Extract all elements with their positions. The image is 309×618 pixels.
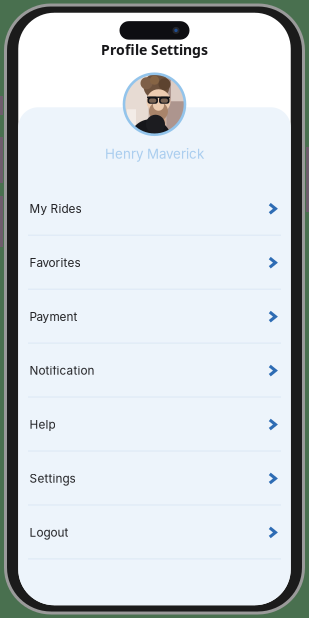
button[interactable]: Settings bbox=[18, 451, 291, 505]
button[interactable]: Payment bbox=[18, 290, 291, 344]
staticText: Payment bbox=[29, 309, 77, 324]
staticText: Favorites bbox=[29, 256, 80, 270]
staticText: Profile Settings bbox=[101, 40, 208, 59]
button[interactable]: Logout bbox=[18, 505, 291, 559]
staticText: Settings bbox=[29, 471, 75, 486]
staticText: My Rides bbox=[29, 202, 81, 216]
staticText: Notification bbox=[29, 363, 94, 378]
staticText: Logout bbox=[29, 525, 68, 539]
staticText: Help bbox=[29, 417, 55, 432]
button[interactable]: My Rides bbox=[18, 182, 291, 236]
button[interactable]: Notification bbox=[18, 344, 291, 398]
staticText: Henry Maverick bbox=[105, 146, 204, 162]
button[interactable]: Favorites bbox=[18, 236, 291, 290]
button[interactable]: Help bbox=[18, 397, 291, 451]
